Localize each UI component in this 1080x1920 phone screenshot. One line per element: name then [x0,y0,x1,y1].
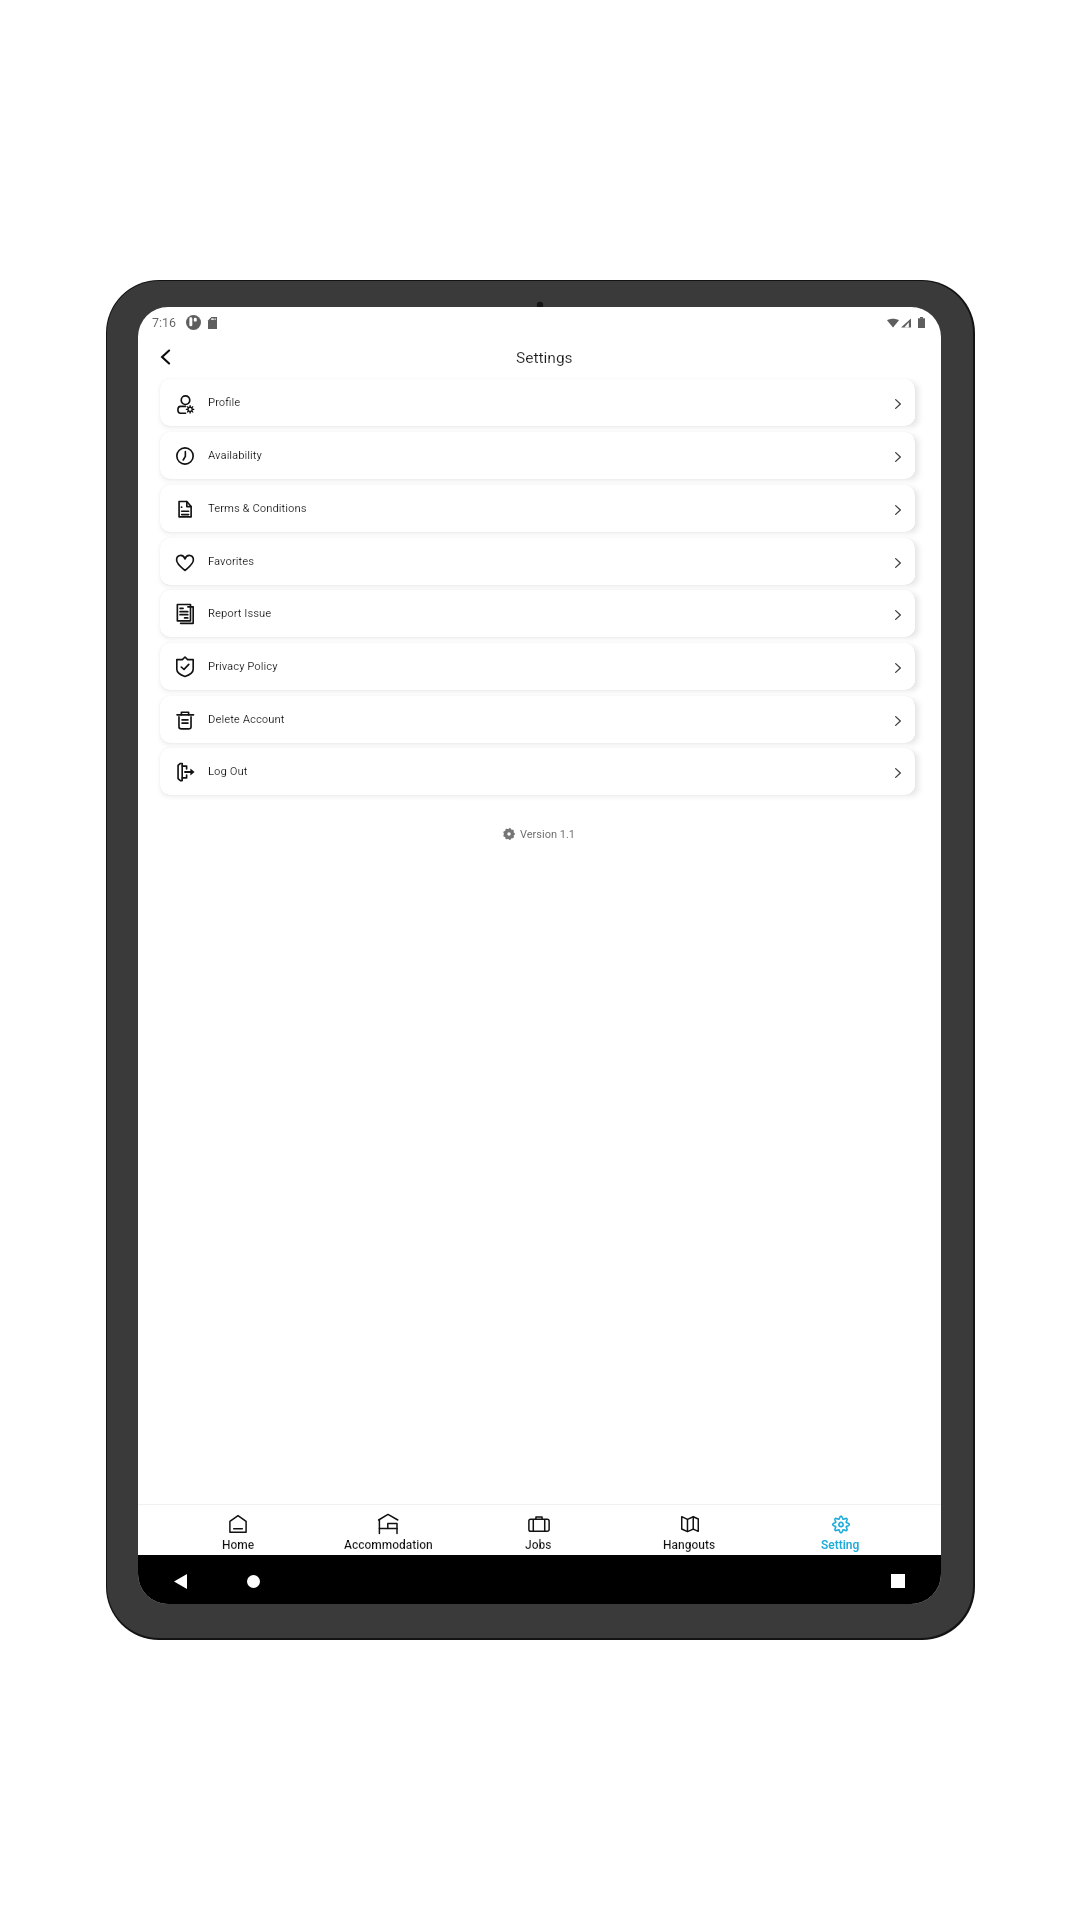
button[interactable]: Profile [160,379,915,426]
staticText: Delete Account [208,713,285,726]
staticText: Availability [208,449,262,462]
staticText: Settings [516,349,573,367]
staticText: 7:16 [152,315,177,330]
button[interactable]: Home [163,1505,313,1555]
button[interactable]: Log Out [160,748,915,795]
button[interactable]: Terms & Conditions [160,485,915,532]
staticText: Version 1.1 [520,828,576,841]
button[interactable]: Delete Account [160,696,915,743]
button[interactable]: Report Issue [160,590,915,637]
button[interactable]: Availability [160,432,915,479]
staticText: Favorites [208,555,255,568]
staticText: Accommodation [344,1538,433,1552]
staticText: Profile [208,396,241,409]
button[interactable]: Hangouts [614,1505,765,1555]
button[interactable]: Privacy Policy [160,643,915,690]
button[interactable]: Home [239,1567,267,1595]
staticText: Setting [821,1538,860,1552]
staticText: Hangouts [663,1538,716,1552]
button[interactable]: Recent apps [884,1567,912,1595]
staticText: Report Issue [208,607,272,620]
button[interactable]: Favorites [160,538,915,585]
button[interactable]: Jobs [463,1505,614,1555]
staticText: Jobs [525,1538,552,1552]
button[interactable]: Back [166,1567,194,1595]
staticText: Terms & Conditions [208,502,307,515]
button[interactable]: Accommodation [313,1505,463,1555]
staticText: Home [222,1538,255,1552]
staticText: Log Out [208,765,248,778]
button[interactable]: Back [147,340,183,376]
staticText: Privacy Policy [208,660,278,673]
button[interactable]: Setting [765,1505,916,1555]
